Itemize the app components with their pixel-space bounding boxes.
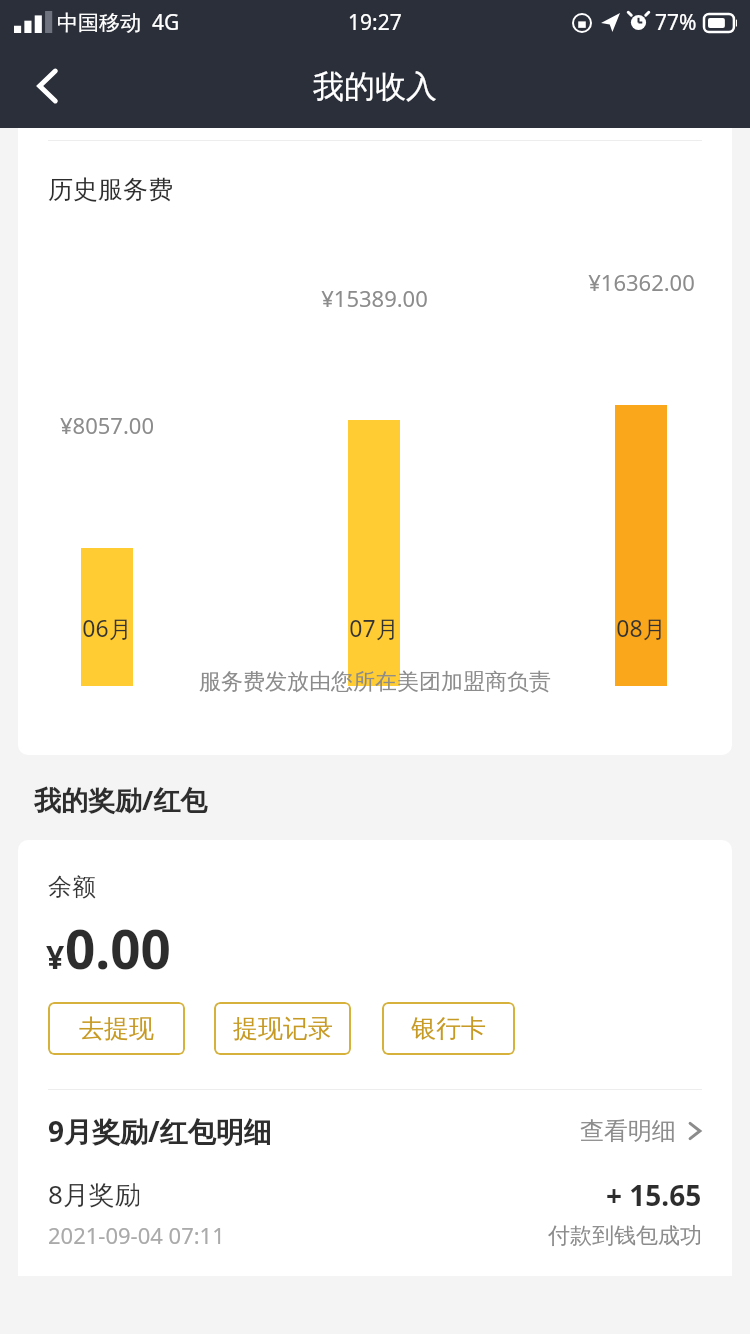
- button[interactable]: 提现记录: [214, 1002, 351, 1055]
- staticText: ¥: [46, 935, 65, 979]
- staticText: ¥15389.00: [321, 283, 428, 313]
- staticText: 提现记录: [233, 1013, 333, 1044]
- staticText: 查看明细: [580, 1116, 676, 1146]
- staticText: 07月: [349, 612, 399, 643]
- staticText: 9月奖励/红包明细: [48, 1112, 272, 1150]
- staticText: ¥16362.00: [588, 267, 695, 297]
- button[interactable]: 去提现: [48, 1002, 185, 1055]
- staticText: 历史服务费: [48, 174, 173, 205]
- staticText: 银行卡: [411, 1013, 486, 1044]
- staticText: 中国移动 4G: [57, 8, 180, 37]
- staticText: 77%: [655, 8, 697, 37]
- staticText: 0.00: [65, 912, 171, 984]
- staticText: 我的奖励/红包: [34, 781, 208, 818]
- button[interactable]: 银行卡: [382, 1002, 515, 1055]
- button[interactable]: 8月奖励: [18, 1176, 732, 1250]
- staticText: 我的收入: [313, 67, 437, 106]
- staticText: 19:27: [348, 8, 402, 37]
- staticText: + 15.65: [606, 1176, 702, 1214]
- button[interactable]: 返回: [0, 44, 96, 128]
- staticText: ¥8057.00: [60, 410, 154, 440]
- staticText: 余额: [48, 872, 96, 902]
- staticText: 付款到钱包成功: [548, 1222, 702, 1250]
- staticText: 06月: [82, 612, 132, 643]
- staticText: 服务费发放由您所在美团加盟商负责: [199, 668, 551, 696]
- staticText: 8月奖励: [48, 1176, 141, 1212]
- staticText: 08月: [616, 612, 666, 643]
- button[interactable]: 查看明细: [580, 1116, 702, 1146]
- staticText: 2021-09-04 07:11: [48, 1220, 225, 1250]
- staticText: 去提现: [79, 1013, 154, 1044]
